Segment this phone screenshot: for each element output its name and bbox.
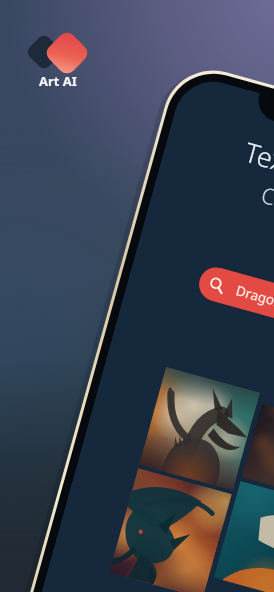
- staticText: Art AI: [39, 72, 77, 90]
- button[interactable]: Art AI logo: [22, 20, 86, 92]
